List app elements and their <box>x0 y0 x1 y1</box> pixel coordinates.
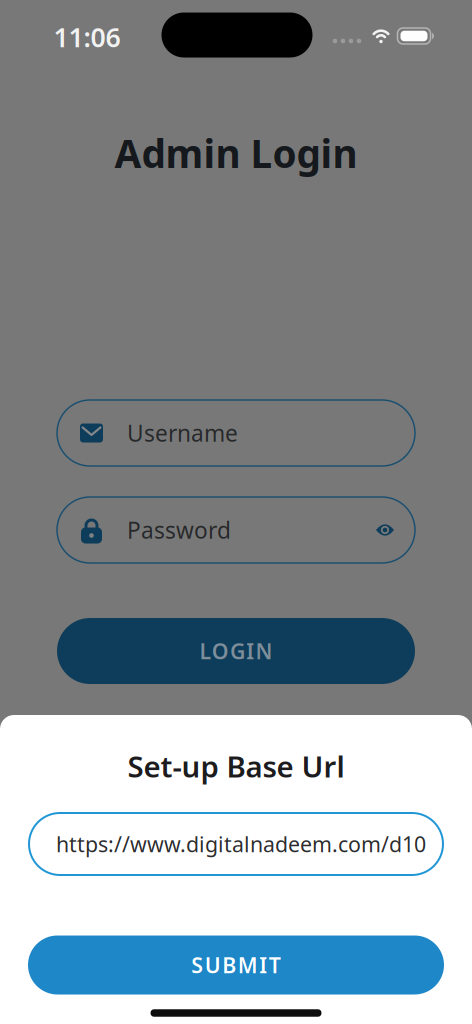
staticText: Username <box>127 418 238 448</box>
staticText: 11:06 <box>53 19 120 55</box>
staticText: https://www.digitalnadeem.com/d10 <box>56 830 426 858</box>
staticText: LOGIN <box>199 637 273 665</box>
staticText: Set-up Base Url <box>127 746 344 785</box>
button[interactable]: LOGIN <box>57 618 415 684</box>
button[interactable]: https://www.digitalnadeem.com/d10 <box>29 813 443 875</box>
button[interactable]: Username <box>57 400 415 466</box>
button[interactable]: SUBMIT <box>28 935 444 994</box>
staticText: Admin Login <box>114 127 357 179</box>
staticText: Password <box>127 515 231 545</box>
button[interactable]: Password <box>57 497 415 563</box>
staticText: SUBMIT <box>191 951 281 979</box>
